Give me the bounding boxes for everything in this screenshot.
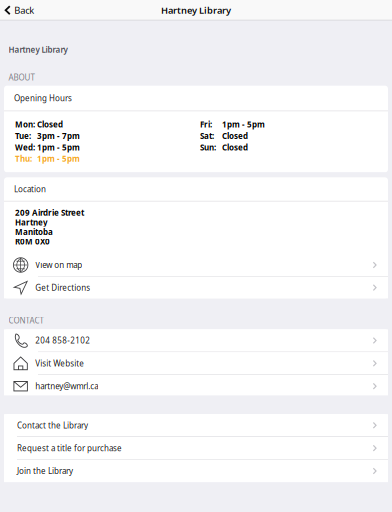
staticText: Contact the Library [17, 420, 88, 431]
button[interactable]: View on map [4, 254, 388, 276]
staticText: Tue: [15, 131, 31, 141]
staticText: 204 858-2102 [35, 335, 90, 346]
staticText: Get Directions [35, 282, 90, 293]
staticText: Thu: [15, 153, 32, 164]
staticText: 1pm - 5pm [37, 153, 80, 164]
button[interactable]: hartney@wmrl.ca [4, 375, 388, 397]
staticText: Closed [222, 142, 248, 153]
staticText: 3pm - 7pm [37, 131, 80, 141]
staticText: hartney@wmrl.ca [35, 381, 98, 391]
button[interactable]: Visit Website [4, 352, 388, 374]
staticText: Back [14, 4, 34, 16]
staticText: 1pm - 5pm [222, 119, 265, 130]
button[interactable]: Join the Library [4, 460, 388, 482]
staticText: Sat: [200, 131, 214, 141]
staticText: Closed [37, 119, 63, 130]
staticText: Mon: [15, 119, 35, 130]
staticText: 1pm - 5pm [37, 142, 80, 153]
staticText: CONTACT [8, 315, 43, 326]
staticText: R0M 0X0 [15, 236, 50, 247]
staticText: Location [14, 184, 46, 194]
staticText: ABOUT [8, 72, 34, 83]
staticText: Sun: [200, 142, 216, 153]
button[interactable]: Contact the Library [4, 414, 388, 436]
staticText: Fri: [200, 119, 212, 130]
staticText: Visit Website [35, 358, 84, 369]
button[interactable]: Get Directions [4, 277, 388, 298]
button[interactable]: Request a title for purchase [4, 437, 388, 459]
staticText: Wed: [15, 142, 35, 153]
staticText: Join the Library [17, 466, 73, 476]
staticText: Request a title for purchase [17, 443, 122, 453]
staticText: 209 Airdrie Street [15, 207, 84, 218]
staticText: Closed [222, 131, 248, 141]
button[interactable]: 204 858-2102 [4, 329, 388, 352]
staticText: Manitoba [15, 227, 53, 237]
staticText: View on map [35, 260, 82, 270]
staticText: Hartney Library [8, 44, 67, 55]
staticText: Opening Hours [14, 93, 72, 103]
button[interactable]: Back [0, 0, 46, 20]
staticText: Hartney Library [161, 4, 231, 16]
staticText: Hartney [15, 217, 48, 228]
